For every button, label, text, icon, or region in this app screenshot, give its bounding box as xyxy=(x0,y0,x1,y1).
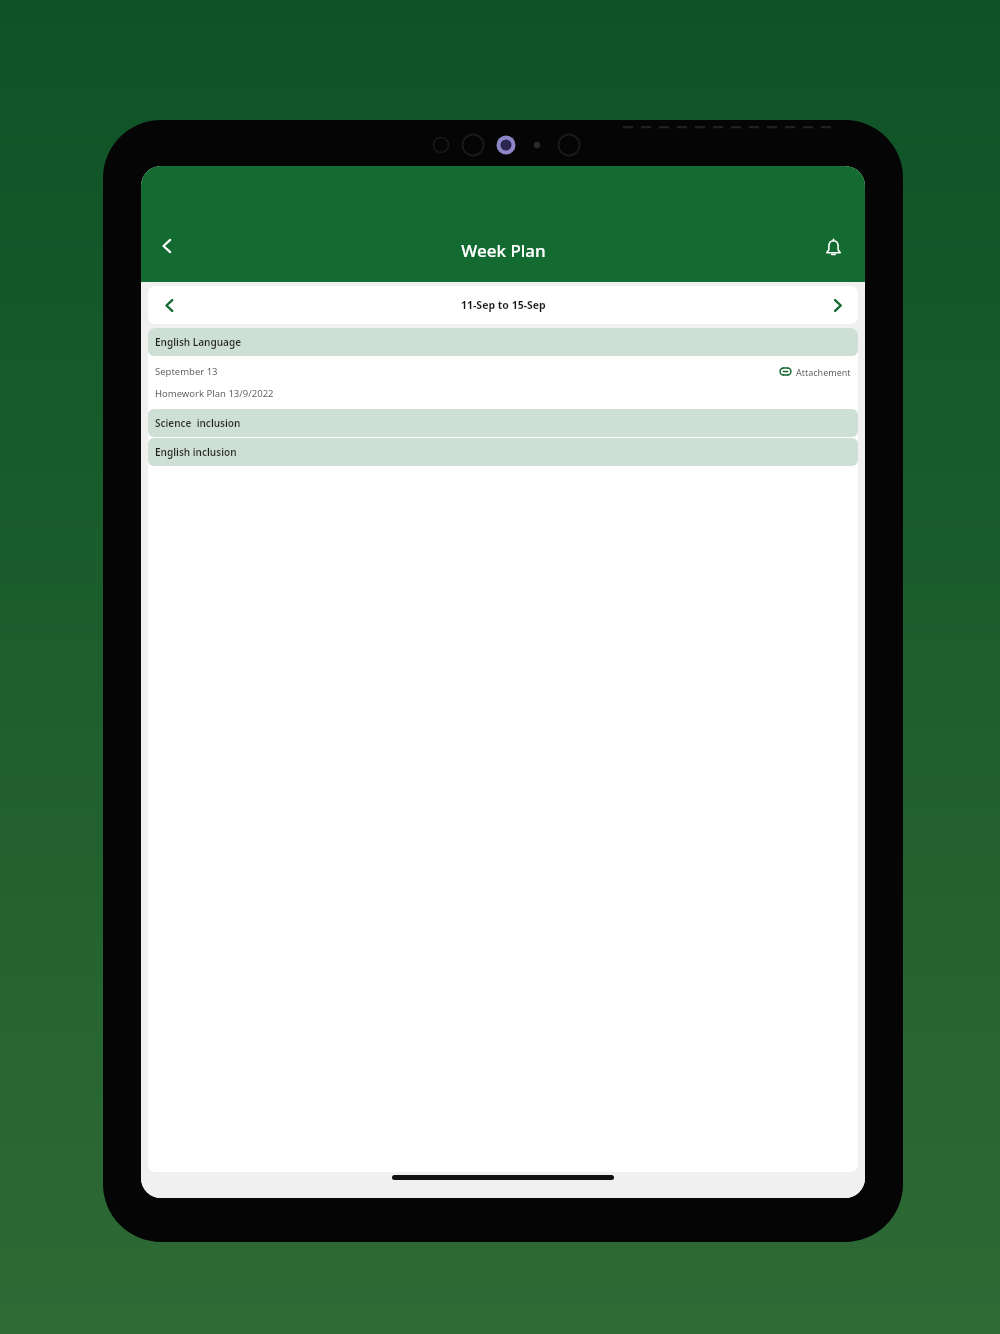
button[interactable]: Back xyxy=(145,224,189,268)
button[interactable]: Next week xyxy=(816,286,858,324)
button[interactable]: Previous week xyxy=(148,286,190,324)
staticText: Homework Plan 13/9/2022 xyxy=(155,387,274,400)
staticText: English Language xyxy=(155,335,242,349)
staticText: English inclusion xyxy=(155,445,237,459)
staticText: Science inclusion xyxy=(155,416,241,430)
staticText: Week Plan xyxy=(461,239,546,262)
button[interactable]: English inclusion xyxy=(148,438,858,466)
button[interactable]: Science inclusion xyxy=(148,409,858,437)
staticText: September 13 xyxy=(155,365,218,378)
button[interactable]: Notifications xyxy=(811,226,855,270)
button[interactable]: English Language xyxy=(148,328,858,356)
staticText: Attachement xyxy=(796,366,851,378)
button[interactable]: September 13 xyxy=(148,356,858,409)
staticText: 11-Sep to 15-Sep xyxy=(461,298,546,312)
